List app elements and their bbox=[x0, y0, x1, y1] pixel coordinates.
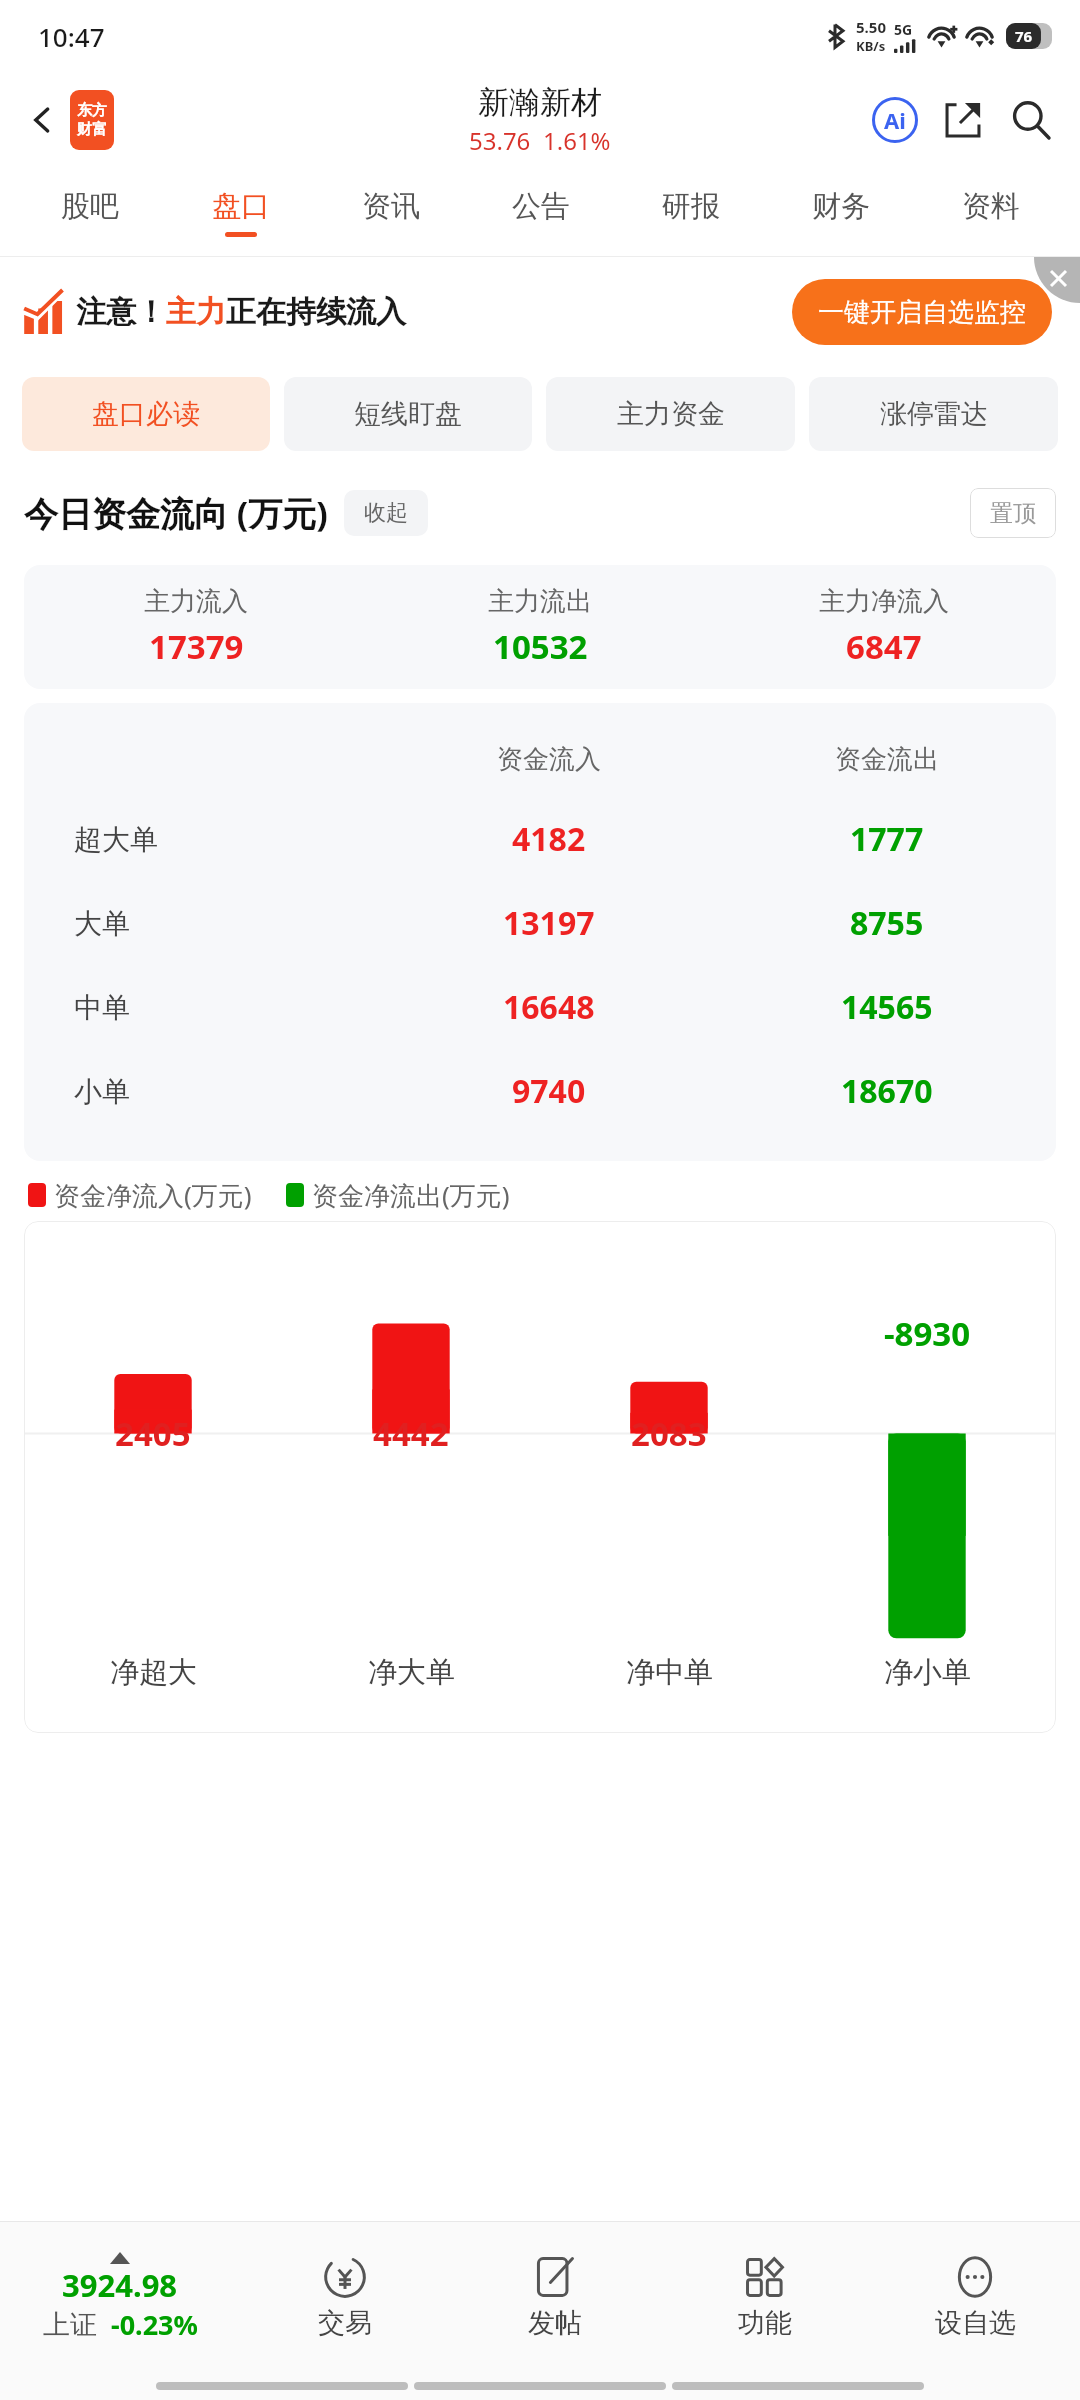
staticText: 资料 bbox=[962, 188, 1020, 225]
staticText: 交易 bbox=[318, 2306, 372, 2340]
staticText: 盘口必读 bbox=[92, 397, 200, 431]
staticText: 1777 bbox=[850, 817, 924, 861]
staticText: 公告 bbox=[512, 188, 570, 225]
staticText: 上证 bbox=[43, 2308, 97, 2342]
button[interactable]: 发帖 bbox=[450, 2222, 660, 2372]
button[interactable]: 一键开启自选监控 bbox=[792, 279, 1052, 345]
button[interactable]: 设自选 bbox=[870, 2222, 1080, 2372]
button[interactable]: 资料 bbox=[916, 168, 1066, 256]
staticText: KB/s bbox=[856, 37, 886, 55]
staticText: 一键开启自选监控 bbox=[818, 296, 1026, 329]
staticText: 4182 bbox=[512, 817, 586, 861]
staticText: 中单 bbox=[74, 990, 130, 1025]
button[interactable]: 大单 bbox=[24, 881, 1056, 965]
staticText: -0.23% bbox=[111, 2306, 198, 2343]
staticText: 功能 bbox=[738, 2306, 792, 2340]
staticText: 大单 bbox=[74, 906, 130, 941]
button[interactable]: 交易 bbox=[240, 2222, 450, 2372]
staticText: 新瀚新材 bbox=[478, 83, 602, 122]
button[interactable]: 盘口 bbox=[165, 168, 316, 256]
staticText: 9740 bbox=[512, 1069, 586, 1113]
staticText: 17379 bbox=[149, 624, 244, 669]
button[interactable]: 盘口必读 bbox=[22, 377, 270, 451]
staticText: 净超大 bbox=[110, 1654, 197, 1691]
staticText: 小单 bbox=[74, 1074, 130, 1109]
button[interactable]: Share bbox=[932, 89, 994, 151]
button[interactable]: 超大单 bbox=[24, 797, 1056, 881]
staticText: 2405 bbox=[115, 1411, 191, 1456]
staticText: 盘口 bbox=[212, 188, 270, 225]
staticText: 涨停雷达 bbox=[880, 397, 988, 431]
staticText: 资金流入 bbox=[497, 743, 601, 776]
button[interactable]: Search bbox=[1000, 89, 1062, 151]
staticText: 设自选 bbox=[935, 2306, 1016, 2340]
staticText: 5.50 bbox=[856, 17, 886, 37]
staticText: 收起 bbox=[364, 499, 408, 527]
button[interactable]: 小单 bbox=[24, 1049, 1056, 1133]
button[interactable]: 公告 bbox=[466, 168, 616, 256]
staticText: 资金净流出(万元) bbox=[312, 1177, 510, 1213]
staticText: -8930 bbox=[884, 1311, 971, 1356]
staticText: 东方 bbox=[77, 101, 107, 120]
button[interactable]: 功能 bbox=[660, 2222, 870, 2372]
staticText: 财富 bbox=[77, 120, 107, 139]
staticText: 3924.98 bbox=[62, 2264, 178, 2306]
button[interactable]: Back bbox=[14, 92, 70, 148]
staticText: 主力净流入 bbox=[819, 585, 949, 618]
button[interactable]: Close bbox=[1034, 257, 1080, 303]
staticText: 资讯 bbox=[362, 188, 420, 225]
staticText: 10532 bbox=[493, 624, 588, 669]
staticText: 净小单 bbox=[884, 1654, 971, 1691]
staticText: 超大单 bbox=[74, 822, 158, 857]
staticText: 76 bbox=[1015, 26, 1033, 46]
staticText: 1.61% bbox=[543, 124, 611, 157]
button[interactable]: 涨停雷达 bbox=[809, 377, 1058, 451]
button[interactable]: 财务 bbox=[766, 168, 916, 256]
button[interactable]: 主力流入 bbox=[24, 565, 1056, 689]
staticText: 16648 bbox=[503, 985, 595, 1029]
staticText: 主力资金 bbox=[617, 397, 725, 431]
button[interactable]: 3924.98 bbox=[0, 2222, 240, 2372]
staticText: 53.76 bbox=[469, 124, 531, 157]
staticText: 正在持续流入 bbox=[226, 293, 406, 331]
staticText: 主力流出 bbox=[488, 585, 592, 618]
button[interactable]: 置顶 bbox=[970, 488, 1056, 538]
button[interactable]: 主力资金 bbox=[546, 377, 795, 451]
staticText: 14565 bbox=[841, 985, 933, 1029]
staticText: 18670 bbox=[841, 1069, 933, 1113]
staticText: 财务 bbox=[812, 188, 870, 225]
staticText: 4442 bbox=[373, 1411, 449, 1456]
button[interactable]: 资讯 bbox=[316, 168, 466, 256]
button[interactable]: 收起 bbox=[344, 490, 428, 536]
button[interactable]: 短线盯盘 bbox=[284, 377, 532, 451]
staticText: 今日资金流向 (万元) bbox=[24, 490, 328, 536]
staticText: 短线盯盘 bbox=[354, 397, 462, 431]
staticText: 5G bbox=[894, 20, 913, 39]
staticText: 13197 bbox=[503, 901, 595, 945]
staticText: 主力 bbox=[166, 293, 226, 331]
staticText: Ai bbox=[884, 105, 906, 135]
staticText: 发帖 bbox=[528, 2306, 582, 2340]
staticText: 置顶 bbox=[990, 499, 1036, 528]
staticText: 研报 bbox=[662, 188, 720, 225]
staticText: 主力流入 bbox=[144, 585, 248, 618]
button[interactable]: AI bbox=[864, 89, 926, 151]
staticText: 资金净流入(万元) bbox=[54, 1177, 252, 1213]
staticText: 10:47 bbox=[38, 19, 105, 54]
button[interactable]: 股吧 bbox=[14, 168, 165, 256]
staticText: 2083 bbox=[631, 1411, 707, 1456]
staticText: 资金流出 bbox=[835, 743, 939, 776]
staticText: 注意！ bbox=[76, 293, 166, 331]
staticText: 8755 bbox=[850, 901, 924, 945]
button[interactable]: East Money bbox=[70, 90, 114, 150]
staticText: 净中单 bbox=[626, 1654, 713, 1691]
button[interactable]: 研报 bbox=[616, 168, 766, 256]
button[interactable]: 中单 bbox=[24, 965, 1056, 1049]
staticText: 6847 bbox=[846, 624, 922, 669]
staticText: 股吧 bbox=[61, 188, 119, 225]
staticText: 净大单 bbox=[368, 1654, 455, 1691]
